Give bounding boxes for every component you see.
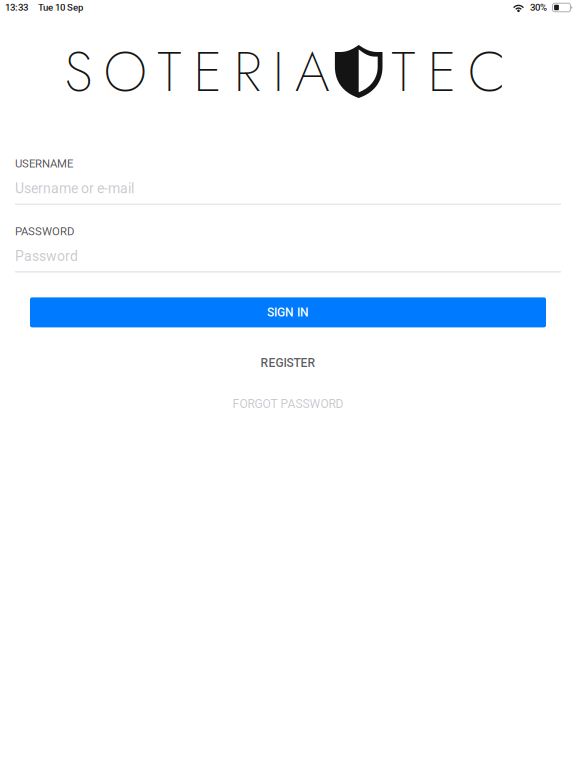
- staticText: 30%: [530, 2, 547, 13]
- staticText: REGISTER: [260, 356, 315, 370]
- button[interactable]: SIGN IN: [0, 297, 576, 327]
- staticText: SOTERIA: [64, 31, 330, 112]
- staticText: Password: [15, 248, 78, 264]
- staticText: TEC: [391, 31, 506, 112]
- staticText: Tue 10 Sep: [38, 2, 83, 13]
- staticText: FORGOT PASSWORD: [232, 397, 343, 411]
- button[interactable]: FORGOT PASSWORD: [0, 393, 576, 414]
- staticText: SIGN IN: [267, 305, 309, 319]
- staticText: PASSWORD: [15, 225, 74, 238]
- staticText: 13:33: [5, 2, 28, 13]
- button[interactable]: REGISTER: [0, 352, 576, 373]
- staticText: USERNAME: [15, 157, 73, 170]
- staticText: Username or e-mail: [15, 180, 134, 197]
